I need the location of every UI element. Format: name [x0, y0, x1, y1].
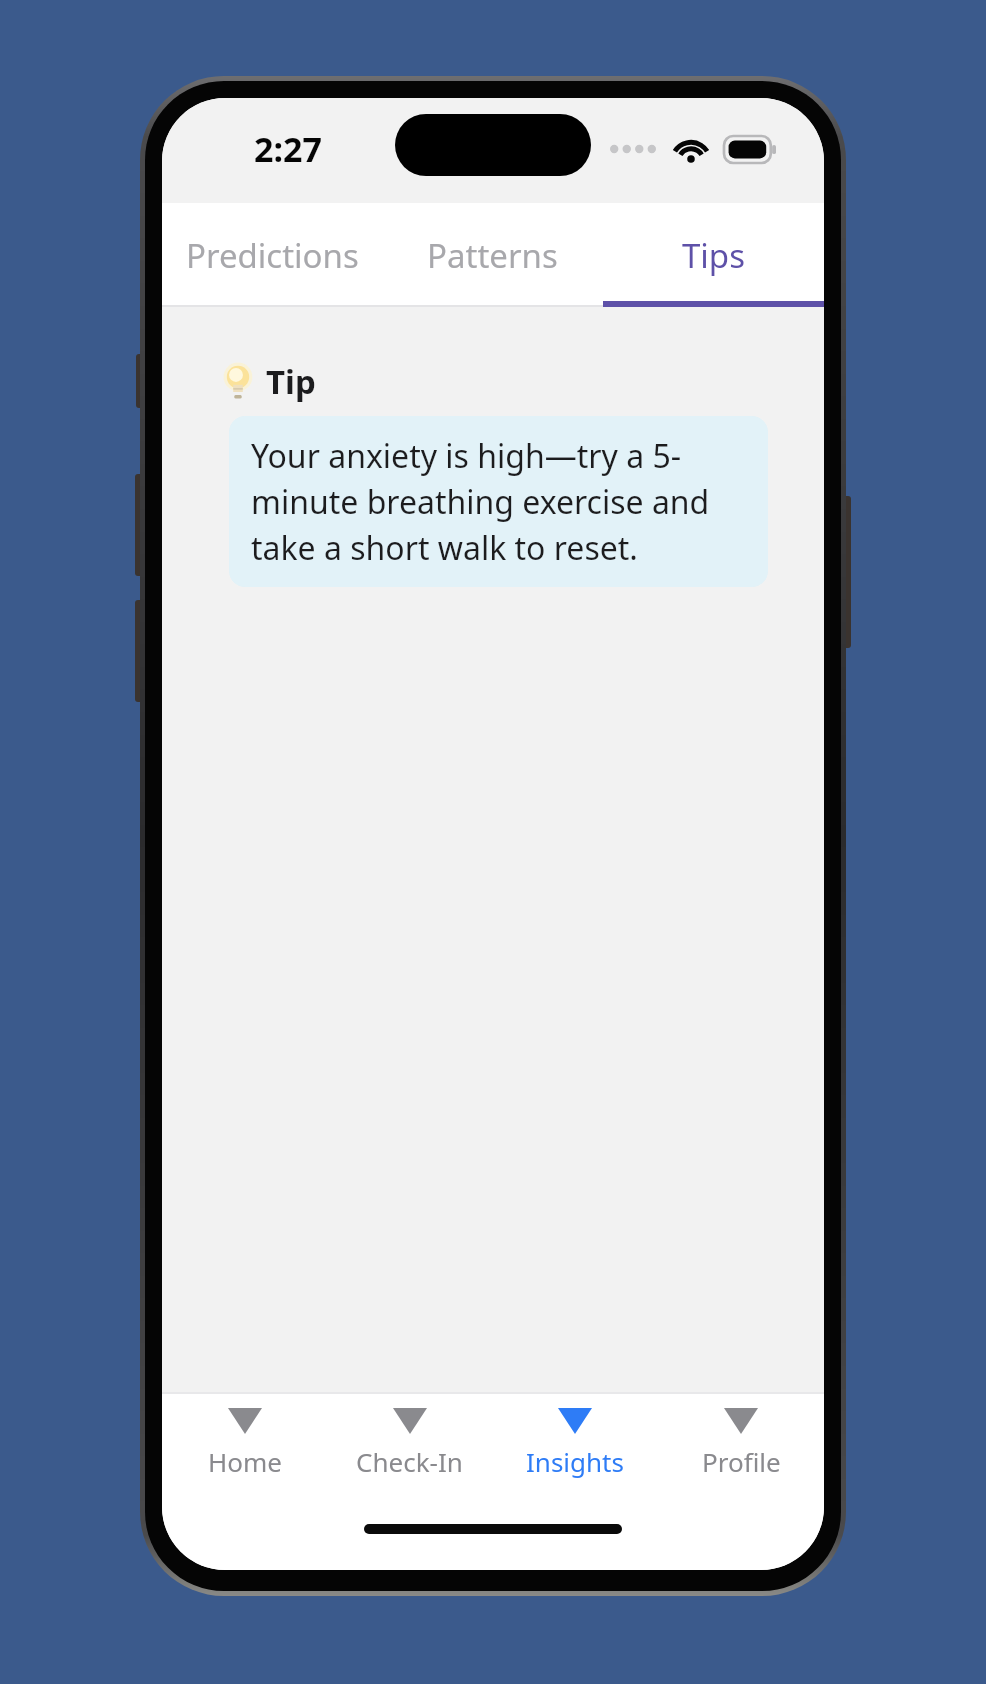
button[interactable]: Check-In — [327, 1392, 492, 1508]
staticText: Patterns — [427, 233, 558, 278]
button[interactable]: Home — [162, 1392, 327, 1508]
staticText: Tip — [266, 359, 316, 404]
button[interactable]: Predictions — [162, 203, 382, 307]
staticText: Profile — [702, 1444, 781, 1479]
button[interactable]: Tips — [603, 203, 824, 307]
staticText: Tips — [682, 233, 745, 278]
button[interactable]: Profile — [658, 1392, 824, 1508]
button[interactable]: Patterns — [382, 203, 603, 307]
staticText: Predictions — [186, 233, 359, 278]
other: Insights — [558, 1408, 592, 1434]
button[interactable]: Insights — [492, 1392, 658, 1508]
other: Home — [228, 1408, 262, 1434]
staticText: Your anxiety is high—try a 5-minute brea… — [251, 434, 746, 569]
other: Profile — [724, 1408, 758, 1434]
staticText: 2:27 — [254, 126, 322, 172]
staticText: Home — [208, 1444, 282, 1479]
staticText: Check-In — [356, 1444, 463, 1479]
other: Check-In — [393, 1408, 427, 1434]
staticText: Insights — [526, 1444, 624, 1479]
button[interactable]: Your anxiety is high—try a 5-minute brea… — [229, 416, 768, 587]
